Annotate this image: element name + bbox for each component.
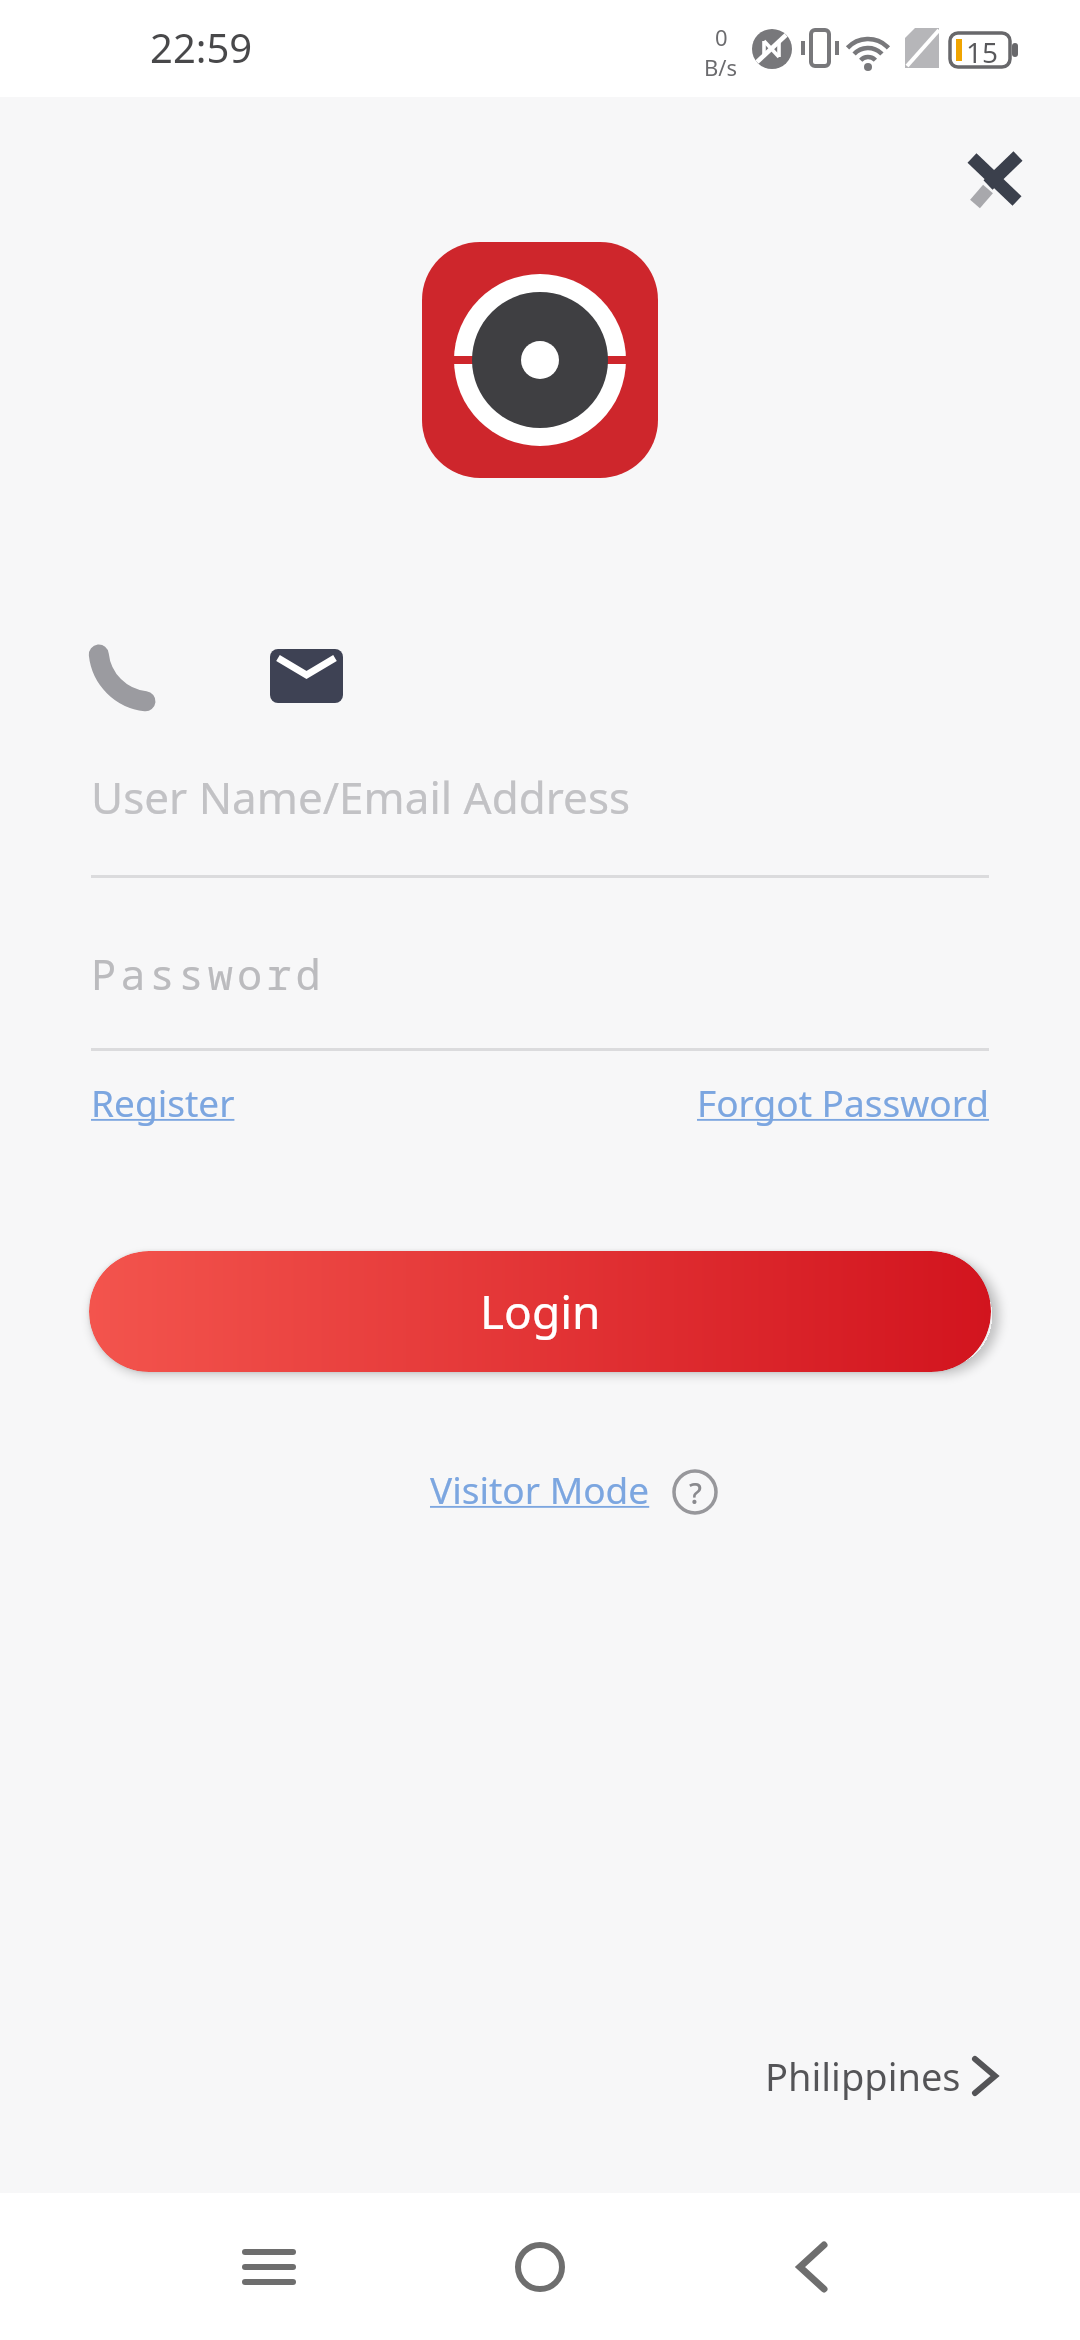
button[interactable] [738,2193,886,2340]
button[interactable] [82,630,170,718]
staticText: 22:59 [150,20,253,74]
staticText: ? [689,1473,702,1512]
button[interactable] [262,632,350,720]
button[interactable] [952,138,1040,226]
button[interactable]: Login [89,1251,991,1372]
button[interactable] [195,2193,343,2340]
staticText: 0 [715,22,728,52]
button[interactable]: Visitor Mode [430,1464,650,1514]
staticText: Philippines [765,2050,961,2102]
staticText: 15 [966,33,999,71]
button[interactable] [466,2193,614,2340]
staticText: User Name/Email Address [91,767,631,827]
button[interactable]: ? [671,1468,719,1516]
button[interactable]: Philippines [0,2050,997,2102]
staticText: B/s [704,52,738,82]
staticText: Login [480,1280,601,1343]
staticText: Password [91,945,325,1002]
button[interactable]: Forgot Password [697,1077,989,1127]
button[interactable]: Register [91,1077,235,1127]
